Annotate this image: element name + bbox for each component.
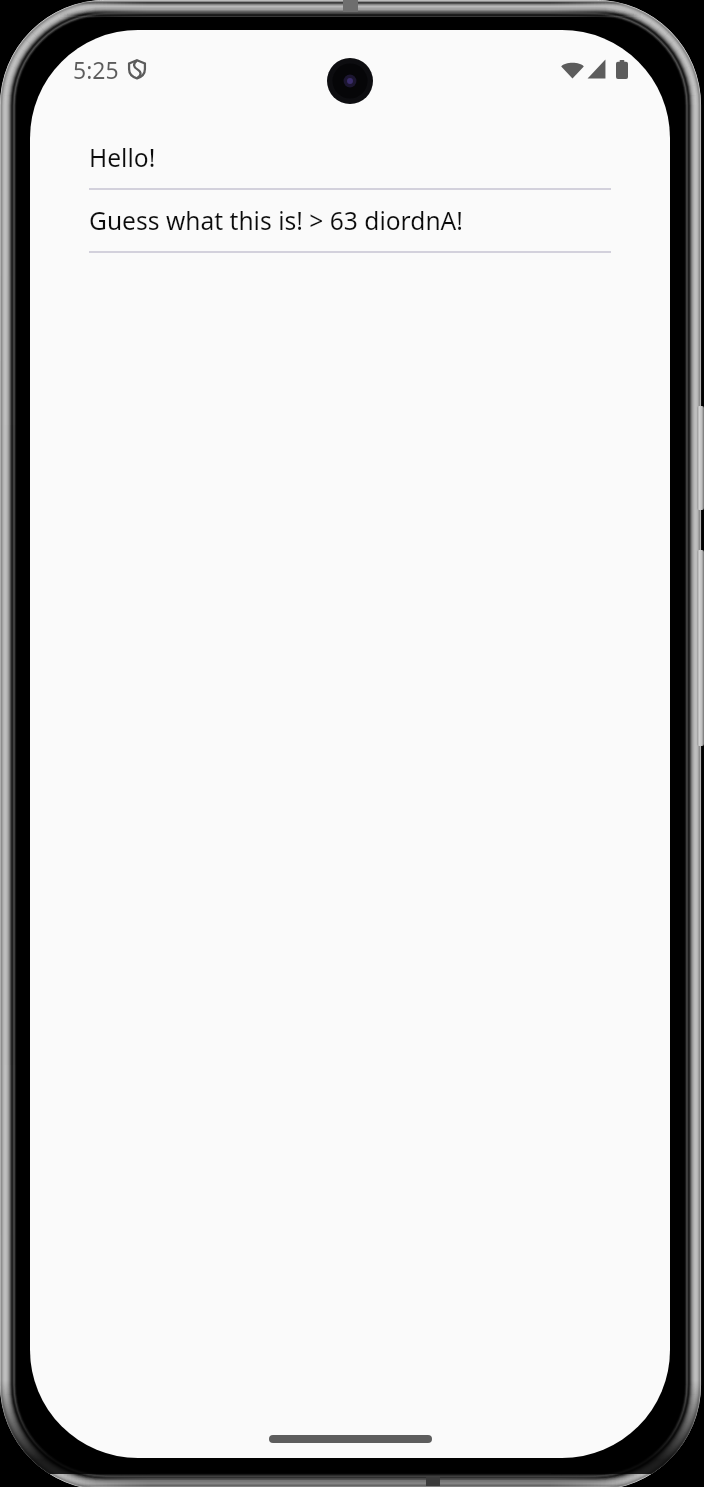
button[interactable]: Guess what this is! > 63 diordnA! bbox=[30, 190, 670, 253]
staticText: 5:25 bbox=[73, 54, 119, 85]
other: Secured by device protection bbox=[128, 59, 146, 79]
other: Mobile signal full bbox=[587, 59, 606, 79]
button[interactable]: Hello! bbox=[30, 127, 670, 190]
other: Battery full bbox=[616, 60, 628, 79]
button[interactable]: Home gesture handle bbox=[269, 1435, 432, 1443]
other: Wi-Fi signal full bbox=[561, 59, 584, 79]
staticText: Hello! bbox=[89, 141, 156, 175]
staticText: Guess what this is! > 63 diordnA! bbox=[89, 204, 463, 238]
